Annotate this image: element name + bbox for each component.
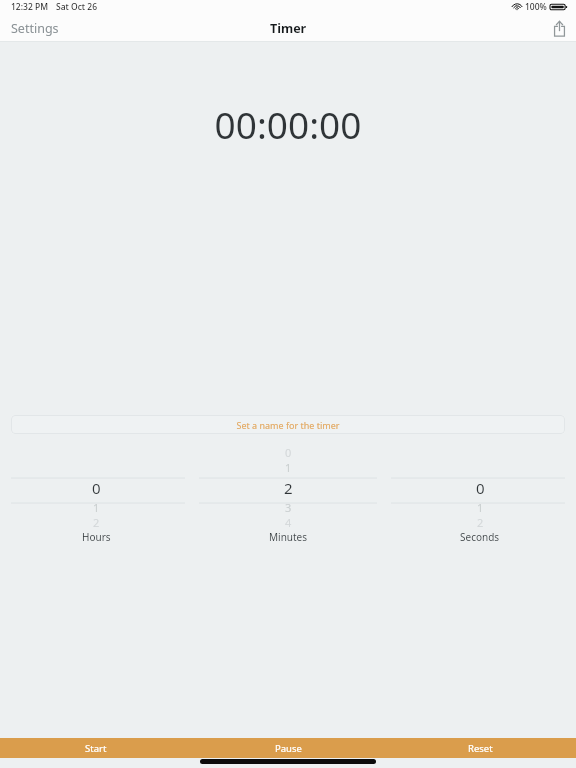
staticText: 12:32 PM [11,1,48,13]
staticText: 4 [285,515,292,530]
button[interactable]: Settings [0,15,70,42]
staticText: 0 [476,478,485,498]
staticText: 1 [93,500,100,515]
staticText: 0 [285,445,292,460]
button[interactable]: Reset [384,738,576,758]
staticText: Seconds [460,530,500,544]
staticText: Timer [270,20,307,37]
staticText: Sat Oct 26 [56,1,98,13]
staticText: Settings [11,20,59,37]
staticText: 2 [477,515,484,530]
staticText: Set a name for the timer [236,419,340,431]
staticText: 3 [285,500,292,515]
staticText: Minutes [269,530,308,544]
button[interactable]: Start [0,738,192,758]
staticText: 100% [525,1,547,13]
button[interactable]: Share [543,16,576,41]
staticText: Pause [275,742,302,755]
staticText: 0 [92,478,101,498]
button[interactable]: Pause [192,738,384,758]
staticText: Start [85,742,107,755]
staticText: 2 [93,515,100,530]
staticText: 2 [284,478,293,498]
staticText: 1 [285,460,292,475]
staticText: Reset [468,742,493,755]
button[interactable]: Set a name for the timer [11,415,565,434]
staticText: Hours [82,530,111,544]
button[interactable]: 0 [0,445,192,530]
button[interactable]: 0 [384,445,576,530]
staticText: 1 [477,500,484,515]
staticText: 00:00:00 [0,99,576,149]
button[interactable]: 0 [192,445,384,530]
